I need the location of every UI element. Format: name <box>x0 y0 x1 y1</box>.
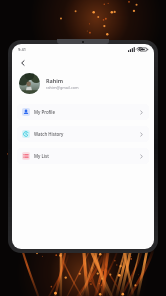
staticText: My List <box>34 153 49 159</box>
button[interactable]: Back <box>17 57 29 69</box>
staticText: rahim@gmail.com <box>46 85 79 90</box>
staticText: Watch History <box>34 131 64 137</box>
staticText: 9:41 <box>18 47 26 52</box>
staticText: My Profile <box>34 109 56 115</box>
button[interactable]: My Profile <box>17 104 149 120</box>
button[interactable]: Rahim <box>19 73 147 94</box>
button[interactable]: Watch History <box>17 126 149 142</box>
staticText: Rahim <box>46 77 64 84</box>
button[interactable]: My List <box>17 148 149 164</box>
